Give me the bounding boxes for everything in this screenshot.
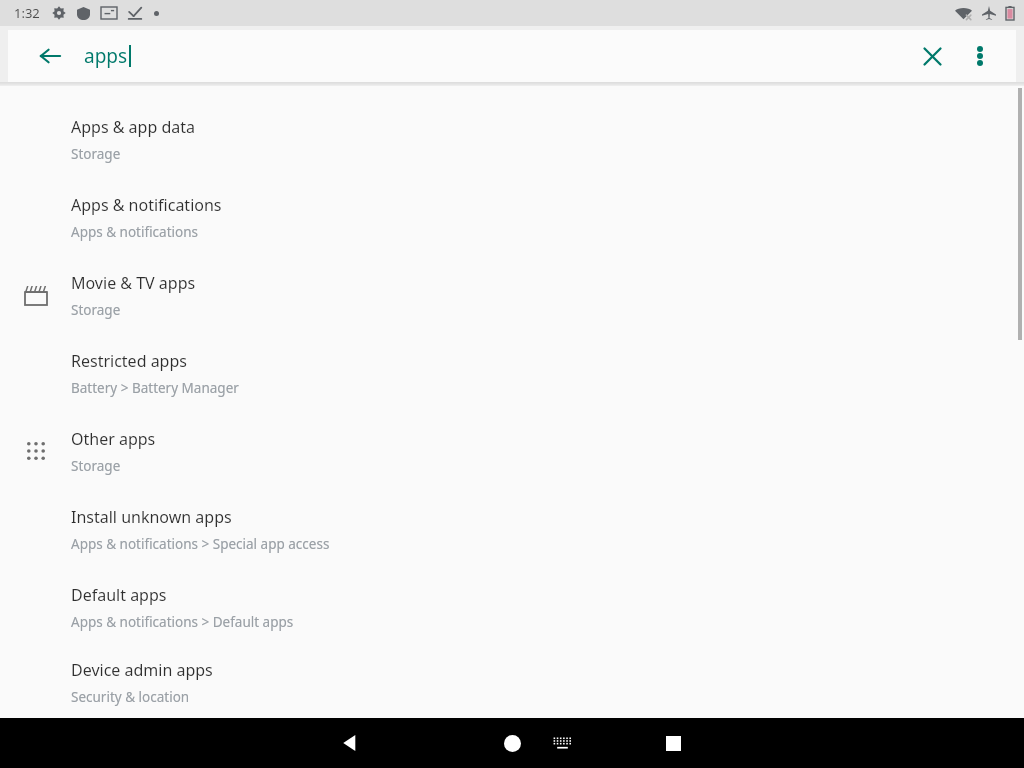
staticText: Device admin apps bbox=[71, 659, 213, 681]
staticText: Apps & notifications bbox=[71, 194, 222, 216]
staticText: 1:32 bbox=[14, 4, 40, 22]
button[interactable]: Other apps bbox=[0, 412, 1024, 490]
button[interactable]: Default apps bbox=[0, 568, 1024, 646]
staticText: Install unknown apps bbox=[71, 506, 232, 528]
button[interactable]: Clear search bbox=[910, 34, 954, 78]
staticText: Storage bbox=[71, 301, 121, 319]
staticText: Apps & notifications > Special app acces… bbox=[71, 535, 330, 553]
button[interactable]: apps bbox=[84, 36, 131, 76]
button[interactable]: More options bbox=[958, 34, 1002, 78]
staticText: Other apps bbox=[71, 428, 156, 450]
staticText: Battery > Battery Manager bbox=[71, 379, 239, 397]
button[interactable]: Device admin apps bbox=[0, 646, 1024, 718]
button[interactable]: Back bbox=[325, 719, 373, 767]
button[interactable]: Back bbox=[28, 34, 72, 78]
button[interactable]: Install unknown apps bbox=[0, 490, 1024, 568]
staticText: Apps & app data bbox=[71, 116, 195, 138]
staticText: Apps & notifications > Default apps bbox=[71, 613, 294, 631]
button[interactable]: Apps & app data bbox=[0, 100, 1024, 178]
button[interactable]: Apps & notifications bbox=[0, 178, 1024, 256]
staticText: Apps & notifications bbox=[71, 223, 198, 241]
button[interactable]: Home bbox=[488, 719, 536, 767]
staticText: Storage bbox=[71, 145, 121, 163]
button[interactable]: Restricted apps bbox=[0, 334, 1024, 412]
staticText: Storage bbox=[71, 457, 121, 475]
staticText: Default apps bbox=[71, 584, 167, 606]
button[interactable]: Recent apps bbox=[649, 719, 697, 767]
button[interactable]: Movie & TV apps bbox=[0, 256, 1024, 334]
staticText: Security & location bbox=[71, 688, 190, 706]
button[interactable]: Switch keyboard bbox=[538, 719, 586, 767]
staticText: apps bbox=[84, 43, 128, 69]
staticText: Restricted apps bbox=[71, 350, 187, 372]
staticText: Movie & TV apps bbox=[71, 272, 196, 294]
